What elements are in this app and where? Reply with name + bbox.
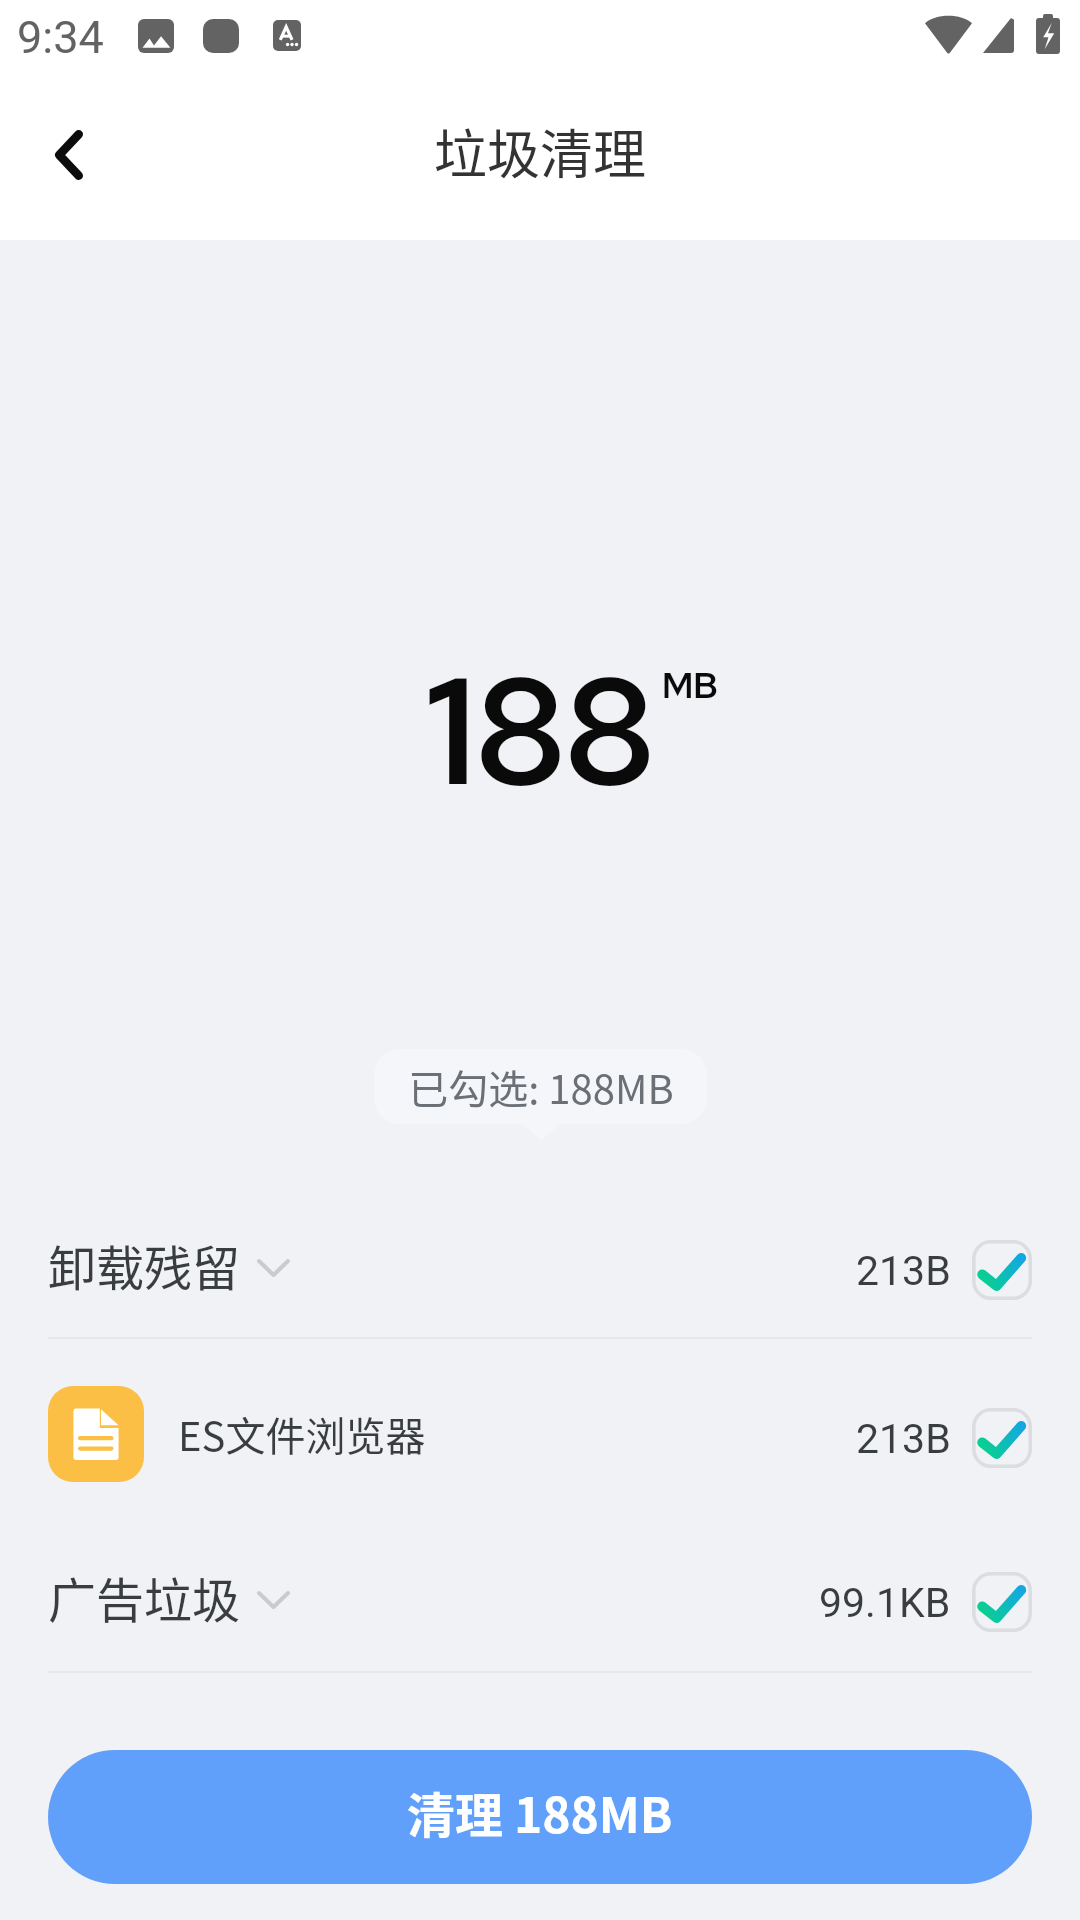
button[interactable]: Back (24, 110, 114, 200)
button[interactable]: 广告垃圾 (0, 1523, 1080, 1668)
staticText: 卸载残留 (48, 1230, 241, 1300)
button[interactable]: ES文件浏览器 (0, 1359, 1080, 1504)
button[interactable]: Toggle selection (972, 1240, 1032, 1300)
staticText: 213B (856, 1247, 951, 1295)
staticText: 188 (426, 631, 655, 829)
staticText: MB (662, 661, 718, 709)
staticText: 9:34 (17, 11, 104, 64)
staticText: 垃圾清理 (434, 113, 646, 190)
staticText: 213B (856, 1415, 951, 1463)
staticText: 广告垃圾 (48, 1562, 241, 1632)
staticText: 已勾选: 188MB (408, 1058, 674, 1116)
button[interactable]: 清理 188MB (48, 1750, 1032, 1884)
button[interactable]: Toggle selection (972, 1408, 1032, 1468)
button[interactable]: 卸载残留 (0, 1191, 1080, 1336)
staticText: ES文件浏览器 (178, 1405, 426, 1463)
staticText: 清理 188MB (407, 1777, 673, 1847)
staticText: 99.1KB (819, 1579, 951, 1627)
button[interactable]: Toggle selection (972, 1572, 1032, 1632)
